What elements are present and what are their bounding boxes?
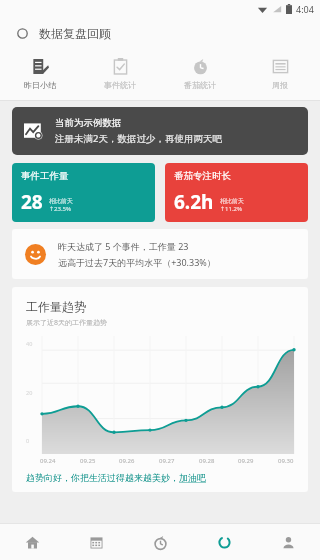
staticText: 09.24 xyxy=(40,457,56,465)
staticText: 09.28 xyxy=(199,457,215,465)
staticText: 6.2h xyxy=(174,189,214,215)
staticText: 0 xyxy=(26,437,30,444)
button[interactable]: 事件统计 xyxy=(80,48,160,100)
staticText: 昨天达成了 5 个事件，工作量 23 xyxy=(58,240,189,252)
button[interactable]: 周报 xyxy=(240,48,320,100)
staticText: 09.29 xyxy=(238,457,254,465)
staticText: 40 xyxy=(26,340,33,347)
staticText: 事件统计 xyxy=(104,80,136,90)
button[interactable]: Pomodoro xyxy=(128,524,192,560)
staticText: 09.25 xyxy=(80,457,96,465)
button[interactable]: 事件工作量 xyxy=(12,163,155,222)
staticText: 昨日小结 xyxy=(24,80,56,90)
staticText: 趋势向好，你把生活过得越来越美妙， xyxy=(26,472,179,483)
staticText: 展示了近8天的工作量趋势 xyxy=(26,318,108,328)
button[interactable]: Statistics xyxy=(192,524,256,560)
staticText: 事件工作量 xyxy=(21,170,69,182)
staticText: 周报 xyxy=(272,80,288,90)
staticText: 相比前天 xyxy=(220,197,244,205)
button[interactable]: 当前为示例数据 xyxy=(12,107,308,155)
staticText: 09.27 xyxy=(159,457,175,465)
button[interactable]: Calendar xyxy=(64,524,128,560)
staticText: 09.26 xyxy=(119,457,135,465)
staticText: 4:04 xyxy=(296,3,314,15)
button[interactable]: 番茄统计 xyxy=(160,48,240,100)
button[interactable]: Home xyxy=(0,524,64,560)
staticText: 番茄专注时长 xyxy=(174,170,231,182)
button[interactable]: 昨日小结 xyxy=(0,48,80,100)
button[interactable]: Refresh xyxy=(12,23,32,43)
button[interactable]: 工作量趋势 xyxy=(12,287,308,492)
button[interactable]: 番茄专注时长 xyxy=(165,163,308,222)
staticText: ↑23.5% xyxy=(49,205,71,213)
button[interactable]: 昨天达成了 5 个事件，工作量 23 xyxy=(12,229,308,279)
staticText: 数据复盘回顾 xyxy=(39,26,111,41)
staticText: 当前为示例数据 xyxy=(55,117,122,129)
staticText: 注册未满2天，数据过少，再使用两天吧 xyxy=(55,132,222,145)
staticText: ↑11.2% xyxy=(220,205,242,213)
staticText: 番茄统计 xyxy=(184,80,216,90)
staticText: 相比前天 xyxy=(49,197,73,205)
staticText: 加油吧 xyxy=(179,472,206,483)
staticText: 20 xyxy=(26,389,33,396)
staticText: 工作量趋势 xyxy=(26,299,86,314)
button[interactable]: Profile xyxy=(256,524,320,560)
staticText: 09.30 xyxy=(278,457,294,465)
staticText: 28 xyxy=(21,189,43,215)
staticText: 远高于过去7天的平均水平（+30.33%） xyxy=(58,256,216,268)
